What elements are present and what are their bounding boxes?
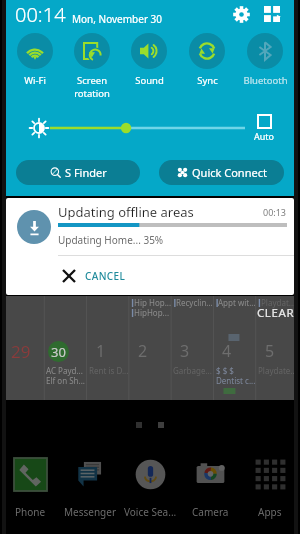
staticText: Camera bbox=[192, 505, 229, 519]
button[interactable]: Brightness bbox=[29, 118, 49, 138]
button[interactable]: Phone bbox=[0, 458, 60, 519]
button[interactable]: CLEAR bbox=[257, 305, 295, 321]
staticText: Playdate... bbox=[258, 365, 297, 376]
button[interactable]: Voice Sea... bbox=[120, 458, 180, 519]
staticText: HipHop... bbox=[134, 307, 170, 318]
staticText: Garbage... bbox=[173, 365, 212, 376]
staticText: Auto bbox=[254, 130, 275, 142]
staticText: Voice Sea... bbox=[124, 505, 177, 519]
staticText: Dentist c... bbox=[216, 375, 256, 386]
staticText: Recyclin... bbox=[176, 297, 213, 308]
staticText: 3 bbox=[180, 340, 190, 362]
button[interactable]: Auto bbox=[254, 114, 275, 142]
staticText: Wi-Fi bbox=[24, 74, 46, 87]
staticText: Appt wit... bbox=[218, 297, 256, 308]
button[interactable]: Brightness slider bbox=[6, 113, 294, 145]
staticText: AC Payd... bbox=[46, 365, 83, 376]
button[interactable]: CANCEL bbox=[63, 256, 294, 295]
staticText: Sound bbox=[135, 74, 164, 87]
staticText: Updating Home... 35% bbox=[58, 233, 164, 247]
staticText: Updating offline areas bbox=[58, 203, 194, 221]
staticText: 4 bbox=[222, 340, 232, 362]
staticText: 5 bbox=[265, 340, 275, 362]
staticText: Quick Connect bbox=[192, 165, 267, 180]
staticText: Elf on Sh... bbox=[46, 375, 85, 386]
button[interactable]: Screen rotation bbox=[63, 33, 120, 100]
staticText: 2 bbox=[138, 340, 148, 362]
staticText: Hip Hop... bbox=[134, 297, 172, 308]
staticText: Messenger bbox=[64, 505, 117, 519]
button[interactable]: Sync bbox=[178, 33, 236, 87]
staticText: Playdat... bbox=[261, 297, 296, 308]
button[interactable]: Apps bbox=[240, 458, 300, 519]
staticText: Rent is D... bbox=[89, 365, 129, 376]
button[interactable]: S Finder bbox=[16, 160, 140, 185]
staticText: CANCEL bbox=[85, 269, 126, 283]
button[interactable]: Sound bbox=[120, 33, 178, 87]
staticText: $ $ $ bbox=[216, 365, 234, 376]
staticText: Phone bbox=[15, 505, 46, 519]
button[interactable]: Camera bbox=[180, 458, 240, 519]
staticText: Screen rotation bbox=[74, 74, 110, 100]
staticText: 30 bbox=[51, 343, 66, 361]
staticText: Mon, November 30 bbox=[72, 12, 163, 26]
staticText: 00:13 bbox=[263, 206, 287, 218]
staticText: S Finder bbox=[65, 165, 107, 180]
button[interactable]: Messenger bbox=[60, 458, 120, 519]
button[interactable]: Settings bbox=[230, 3, 252, 25]
button[interactable]: Wi-Fi bbox=[6, 33, 63, 87]
staticText: Sync bbox=[197, 74, 218, 87]
staticText: 00:14 bbox=[15, 1, 66, 28]
staticText: 1 bbox=[96, 340, 106, 362]
staticText: 29 bbox=[11, 340, 31, 363]
staticText: Bluetooth bbox=[243, 74, 288, 87]
button[interactable]: Edit quick settings bbox=[261, 3, 283, 25]
staticText: Apps bbox=[258, 505, 282, 519]
button[interactable]: Quick Connect bbox=[159, 160, 284, 185]
button[interactable]: Bluetooth bbox=[236, 33, 294, 87]
